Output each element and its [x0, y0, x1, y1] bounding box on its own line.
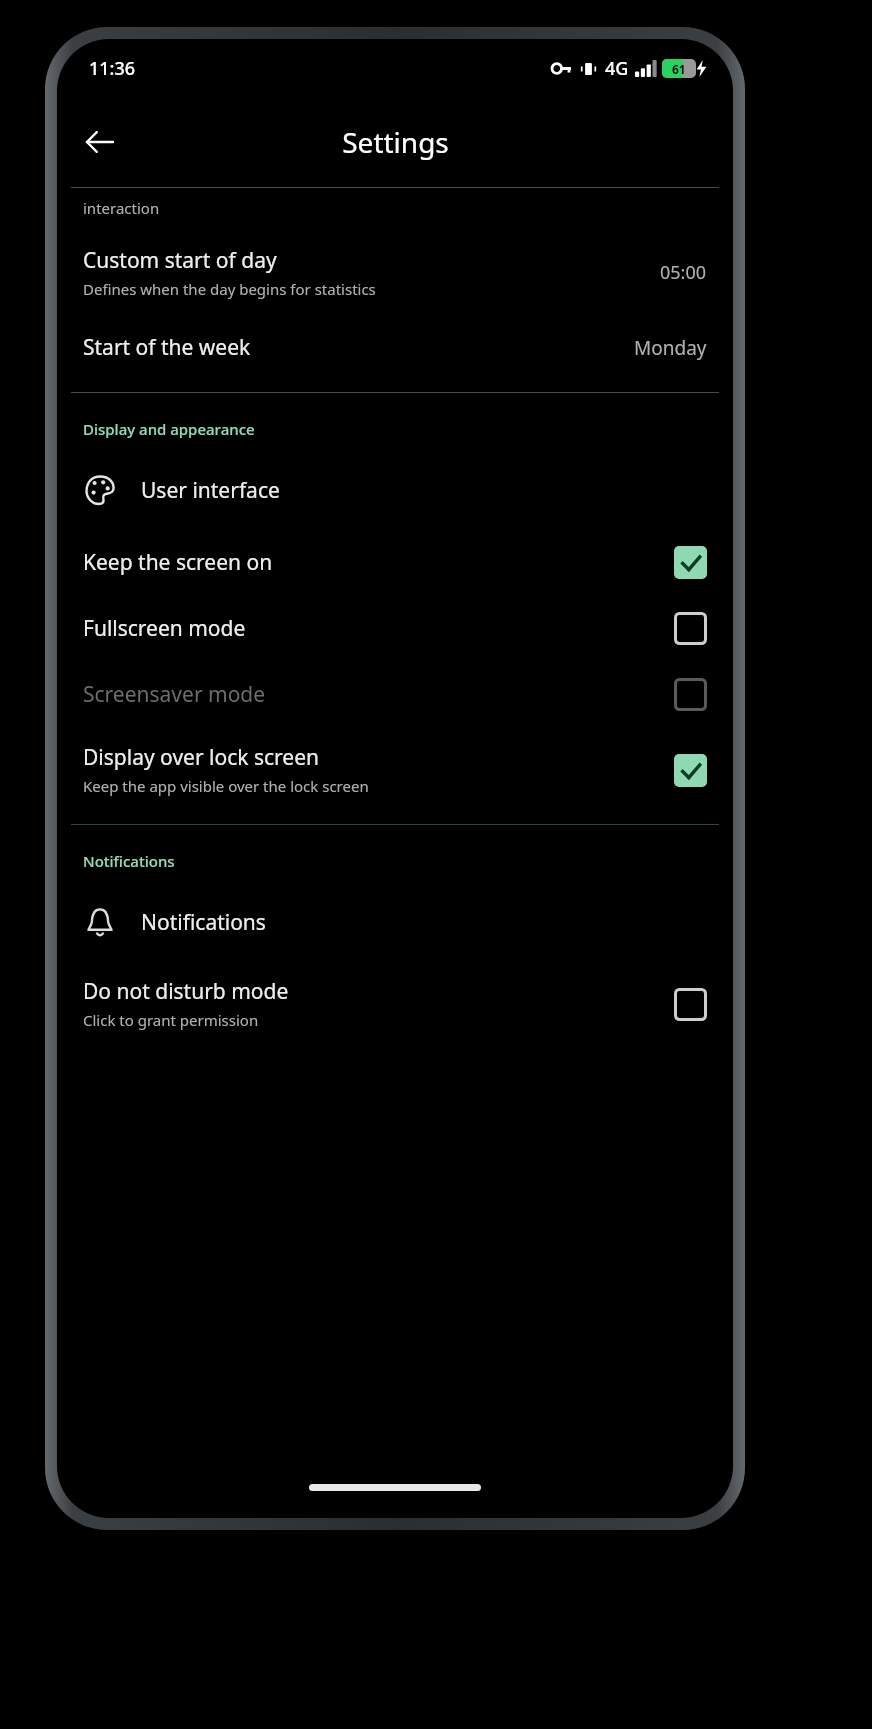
staticText: Monday: [634, 335, 707, 361]
button[interactable]: Notifications: [57, 897, 733, 947]
staticText: Display over lock screen: [83, 743, 319, 772]
button[interactable]: Custom start of day: [57, 240, 733, 305]
staticText: Notifications: [141, 908, 266, 937]
staticText: Custom start of day: [83, 246, 277, 275]
button[interactable]: Fullscreen mode: [57, 595, 733, 661]
staticText: Start of the week: [83, 333, 634, 362]
button[interactable]: Keep the screen on: [57, 529, 733, 595]
staticText: Display and appearance: [83, 419, 255, 439]
button[interactable]: Start of the week: [57, 327, 733, 368]
staticText: Notifications: [83, 851, 175, 871]
staticText: Fullscreen mode: [83, 614, 246, 643]
button[interactable]: Do not disturb mode: [57, 961, 733, 1046]
button[interactable]: Screensaver mode: [57, 661, 733, 727]
staticText: interaction: [83, 198, 160, 218]
staticText: Settings: [342, 123, 449, 161]
button[interactable]: Back: [71, 114, 127, 170]
staticText: Keep the screen on: [83, 548, 273, 577]
staticText: 05:00: [660, 260, 707, 285]
staticText: User interface: [141, 476, 280, 505]
staticText: Defines when the day begins for statisti…: [83, 279, 376, 299]
staticText: Screensaver mode: [83, 680, 266, 709]
staticText: 11:36: [89, 56, 136, 81]
button[interactable]: Display over lock screen: [57, 727, 733, 812]
staticText: Do not disturb mode: [83, 977, 289, 1006]
staticText: Keep the app visible over the lock scree…: [83, 776, 369, 796]
button[interactable]: User interface: [57, 465, 733, 515]
staticText: 4G: [605, 56, 629, 81]
staticText: 61: [672, 61, 686, 77]
staticText: Click to grant permission: [83, 1010, 259, 1030]
